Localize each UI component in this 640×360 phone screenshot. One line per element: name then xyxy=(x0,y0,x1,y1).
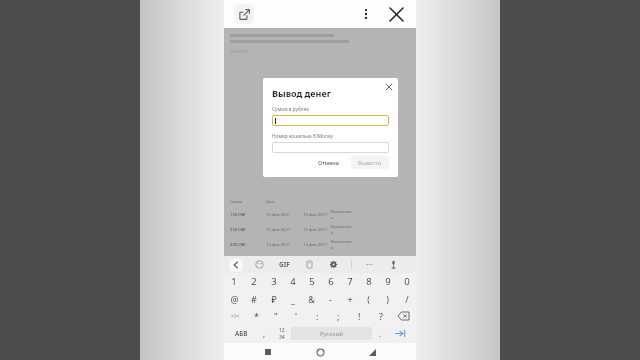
button[interactable]: . xyxy=(372,324,388,343)
staticText: 5 xyxy=(309,275,315,288)
staticText: : xyxy=(316,310,319,322)
staticText: 250.00₽ xyxy=(230,227,246,233)
staticText: . xyxy=(379,328,382,339)
button[interactable]: Backspace xyxy=(391,307,416,324)
staticText: 16 фев 2021 xyxy=(266,212,291,218)
button[interactable]: 8 xyxy=(359,273,378,290)
button[interactable]: Emoji xyxy=(253,258,266,271)
button[interactable]: Home xyxy=(312,344,328,360)
staticText: Сумма xyxy=(230,199,242,204)
button[interactable]: 1 xyxy=(224,273,244,290)
button[interactable]: ) xyxy=(378,290,397,307)
staticText: Отмена xyxy=(318,159,339,166)
button[interactable]: # xyxy=(244,290,264,307)
button[interactable]: ! xyxy=(349,307,370,324)
staticText: ₽ xyxy=(271,293,277,305)
button[interactable]: ( xyxy=(359,290,378,307)
button[interactable]: : xyxy=(307,307,328,324)
staticText: " xyxy=(274,310,278,322)
button[interactable]: ₽ xyxy=(264,290,283,307)
button[interactable]: Back xyxy=(364,344,380,360)
staticText: 16 фев 2021 xyxy=(303,212,328,218)
button[interactable]: * xyxy=(246,307,266,324)
staticText: =\< xyxy=(231,312,240,319)
button[interactable]: , xyxy=(256,324,272,343)
staticText: _ xyxy=(291,293,295,305)
button[interactable]: Recent apps xyxy=(260,344,276,360)
button[interactable]: Отмена xyxy=(311,156,346,169)
button[interactable]: 250.00₽ xyxy=(230,222,410,237)
staticText: 15 фев 2021 xyxy=(266,227,291,233)
button[interactable]: " xyxy=(266,307,286,324)
staticText: 12 xyxy=(279,327,285,334)
staticText: 6 xyxy=(328,275,334,288)
staticText: Выполнено xyxy=(331,239,353,251)
button[interactable]: =\< xyxy=(224,307,246,324)
staticText: GIF xyxy=(279,260,290,269)
staticText: Номер кошелька ЮMoney xyxy=(272,133,333,140)
button[interactable]: ; xyxy=(328,307,349,324)
button[interactable] xyxy=(272,142,389,153)
staticText: / xyxy=(405,293,409,305)
button[interactable]: & xyxy=(302,290,321,307)
button[interactable]: 3 xyxy=(264,273,283,290)
button[interactable]: 2 xyxy=(244,273,264,290)
button[interactable]: Open in new window xyxy=(234,4,254,24)
button[interactable]: 5 xyxy=(302,273,321,290)
button[interactable]: More options xyxy=(354,2,378,26)
staticText: & xyxy=(308,293,315,305)
button[interactable]: Clipboard xyxy=(303,258,316,271)
button[interactable]: _ xyxy=(283,290,302,307)
button[interactable]: АБВ xyxy=(227,324,256,343)
staticText: Дата xyxy=(266,199,275,204)
staticText: 7 xyxy=(347,275,353,288)
button[interactable]: 7 xyxy=(340,273,359,290)
staticText: Выполнено xyxy=(331,209,353,221)
staticText: 14 фев 2021 xyxy=(266,242,291,248)
staticText: ( xyxy=(367,293,370,305)
staticText: Русский xyxy=(320,330,343,338)
staticText: ) xyxy=(386,293,389,305)
staticText: 34 xyxy=(279,334,285,341)
button[interactable]: Close xyxy=(384,2,408,26)
button[interactable]: 9 xyxy=(378,273,397,290)
button[interactable]: 150.00₽ xyxy=(230,207,410,222)
button[interactable]: 4 xyxy=(283,273,302,290)
staticText: - xyxy=(329,293,332,305)
button[interactable]: ' xyxy=(286,307,307,324)
button[interactable]: Вывести xyxy=(351,156,389,169)
button[interactable]: Numbers xyxy=(272,324,291,343)
button[interactable] xyxy=(272,115,389,126)
button[interactable]: / xyxy=(397,290,416,307)
button[interactable]: - xyxy=(321,290,340,307)
button[interactable]: @ xyxy=(224,290,244,307)
button[interactable]: More xyxy=(363,258,376,271)
staticText: , xyxy=(263,328,266,339)
button[interactable]: GIF xyxy=(277,258,292,271)
staticText: 3 xyxy=(271,275,277,288)
button[interactable]: Русский xyxy=(291,327,372,340)
button[interactable]: Close dialog xyxy=(383,81,395,93)
button[interactable]: Enter xyxy=(388,324,413,343)
staticText: ' xyxy=(295,310,298,322)
staticText: 8 xyxy=(366,275,372,288)
staticText: Выполнено xyxy=(331,224,353,236)
staticText: 14 фев 2021 xyxy=(303,242,328,248)
button[interactable]: Settings xyxy=(327,258,340,271)
staticText: Вывести xyxy=(358,159,382,166)
button[interactable]: ? xyxy=(370,307,391,324)
staticText: 9 xyxy=(385,275,391,288)
staticText: Вывод денег xyxy=(272,87,332,99)
button[interactable]: 300.00₽ xyxy=(230,237,410,252)
staticText: # xyxy=(251,293,257,305)
button[interactable]: 6 xyxy=(321,273,340,290)
button[interactable]: 0 xyxy=(397,273,416,290)
button[interactable]: + xyxy=(340,290,359,307)
staticText: 300.00₽ xyxy=(230,242,246,248)
staticText: ; xyxy=(337,310,340,322)
staticText: ! xyxy=(358,310,361,322)
staticText: 4 xyxy=(290,275,296,288)
button[interactable]: Voice input xyxy=(387,258,400,271)
staticText: 1 xyxy=(231,275,237,288)
button[interactable]: Back xyxy=(229,258,243,272)
